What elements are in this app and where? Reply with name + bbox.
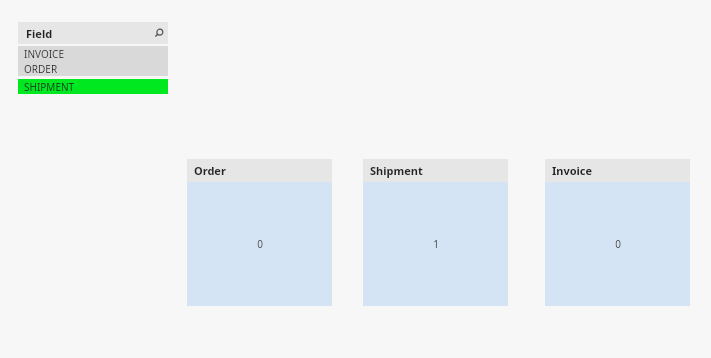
staticText: Field — [26, 26, 148, 41]
button[interactable]: Invoice — [545, 159, 690, 306]
staticText: Shipment — [370, 163, 423, 178]
staticText: SHIPMENT — [24, 80, 75, 94]
button[interactable]: Order — [187, 159, 332, 306]
staticText: 1 — [433, 237, 439, 251]
button[interactable]: Shipment — [363, 159, 508, 306]
button[interactable]: Search — [148, 23, 168, 43]
staticText: 0 — [615, 237, 621, 251]
staticText: Order — [194, 163, 226, 178]
button[interactable]: INVOICE — [18, 46, 168, 61]
staticText: ORDER — [24, 62, 58, 76]
button[interactable]: Field — [18, 22, 168, 44]
staticText: Invoice — [552, 163, 593, 178]
button[interactable]: ORDER — [18, 61, 168, 76]
staticText: INVOICE — [24, 47, 64, 61]
staticText: 0 — [257, 237, 263, 251]
button[interactable]: SHIPMENT — [18, 79, 168, 94]
